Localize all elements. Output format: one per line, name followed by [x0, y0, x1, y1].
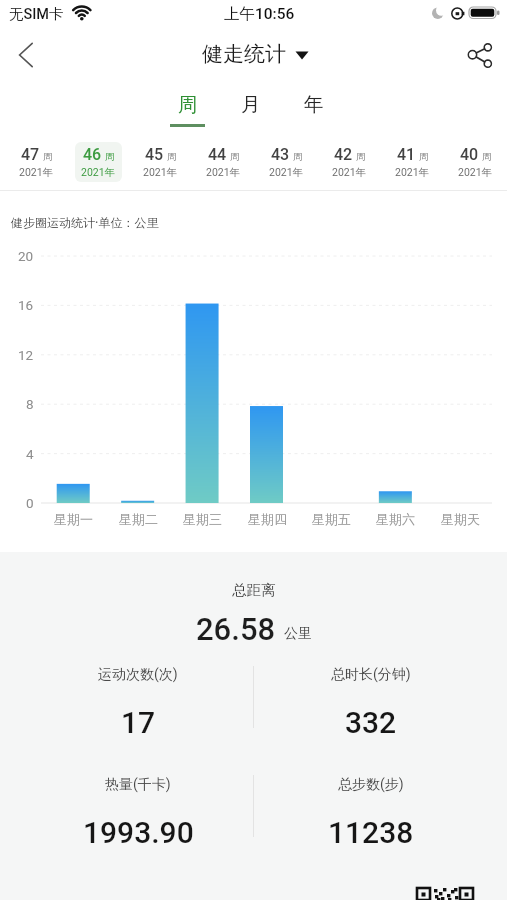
staticText: 26.58 — [196, 611, 276, 647]
staticText: 0 — [26, 495, 34, 511]
staticText: 总步数(步) — [338, 776, 404, 794]
button[interactable]: 44 — [192, 136, 255, 188]
button[interactable]: 41 — [381, 136, 444, 188]
staticText: 44 — [208, 145, 227, 164]
button[interactable]: 45 — [129, 136, 192, 188]
staticText: 月 — [241, 92, 261, 117]
staticText: 星期二 — [119, 511, 158, 527]
staticText: 星期六 — [376, 511, 415, 527]
staticText: 20 — [18, 248, 34, 264]
staticText: 星期五 — [312, 511, 351, 527]
staticText: 周 — [178, 92, 198, 117]
staticText: 周 — [293, 151, 303, 163]
staticText: 4 — [26, 446, 34, 462]
staticText: 2021年 — [458, 166, 493, 179]
staticText: 45 — [145, 145, 164, 164]
button[interactable]: 40 — [444, 136, 507, 188]
staticText: 总时长(分钟) — [331, 666, 411, 684]
staticText: 星期四 — [248, 511, 287, 527]
button[interactable]: 健走统计 — [202, 41, 309, 67]
staticText: 无SIM卡 — [9, 5, 64, 23]
button[interactable]: 年 — [290, 85, 338, 123]
staticText: 46 — [83, 145, 102, 164]
staticText: 运动次数(次) — [98, 666, 178, 684]
button[interactable]: 周 — [164, 85, 212, 123]
button[interactable] — [458, 32, 502, 76]
button[interactable]: 月 — [227, 85, 275, 123]
staticText: 公里 — [284, 625, 312, 643]
staticText: 2021年 — [269, 166, 304, 179]
staticText: 年 — [304, 92, 324, 117]
staticText: 8 — [26, 396, 34, 412]
staticText: 2021年 — [143, 166, 178, 179]
button[interactable]: 43 — [255, 136, 318, 188]
staticText: 11238 — [328, 815, 414, 850]
staticText: 1993.90 — [83, 815, 194, 850]
staticText: 2021年 — [81, 166, 116, 179]
staticText: 星期一 — [54, 511, 93, 527]
staticText: 2021年 — [19, 166, 54, 179]
staticText: 周 — [167, 151, 177, 163]
staticText: 17 — [121, 705, 156, 740]
staticText: 16 — [18, 297, 34, 313]
staticText: 星期三 — [183, 511, 222, 527]
staticText: 40 — [460, 145, 479, 164]
staticText: 周 — [43, 151, 53, 163]
staticText: 健走统计 — [202, 41, 286, 67]
staticText: 332 — [345, 705, 397, 740]
staticText: 上午10:56 — [224, 4, 295, 24]
staticText: 星期天 — [441, 511, 480, 527]
staticText: 周 — [356, 151, 366, 163]
button[interactable]: 46 — [67, 136, 129, 188]
staticText: 41 — [397, 145, 416, 164]
staticText: 12 — [18, 347, 34, 363]
staticText: 周 — [230, 151, 240, 163]
button[interactable]: 47 — [5, 136, 67, 188]
button[interactable]: 42 — [318, 136, 381, 188]
staticText: 总距离 — [232, 581, 276, 599]
button[interactable] — [6, 36, 46, 74]
staticText: 热量(千卡) — [105, 776, 171, 794]
staticText: 42 — [334, 145, 353, 164]
staticText: 健步圈运动统计·单位：公里 — [11, 215, 159, 230]
staticText: 周 — [105, 151, 115, 163]
staticText: 2021年 — [395, 166, 430, 179]
staticText: 43 — [271, 145, 290, 164]
staticText: 周 — [482, 151, 492, 163]
staticText: 47 — [21, 145, 40, 164]
staticText: 周 — [419, 151, 429, 163]
staticText: 2021年 — [332, 166, 367, 179]
staticText: 2021年 — [206, 166, 241, 179]
